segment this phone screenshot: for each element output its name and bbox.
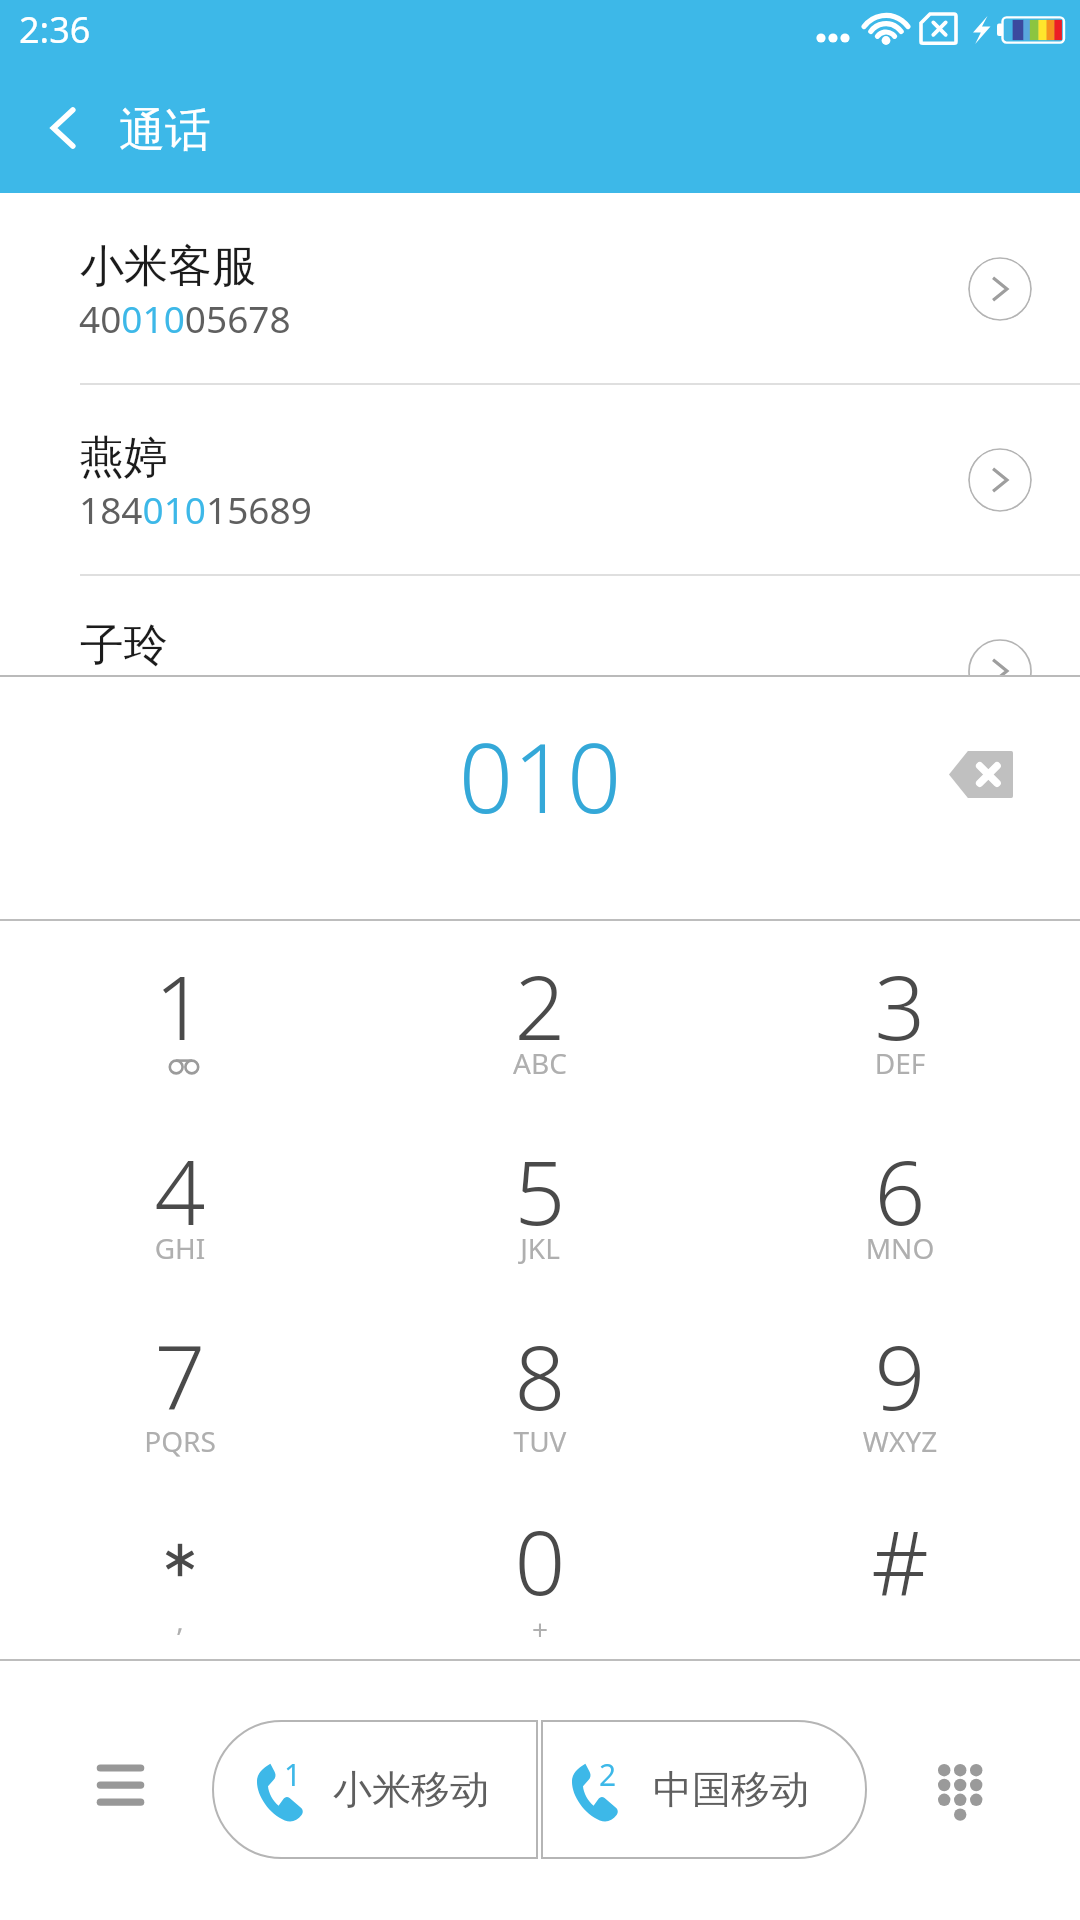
button[interactable]: , <box>0 1475 360 1660</box>
staticText: 小米移动 <box>333 1765 489 1814</box>
button[interactable]: 2 <box>360 920 720 1105</box>
staticText: 6 <box>720 1130 1080 1251</box>
staticText: DEF <box>720 1044 1080 1082</box>
button[interactable]: 4 <box>0 1105 360 1290</box>
staticText: 3 <box>720 945 1080 1066</box>
staticText: MNO <box>720 1229 1080 1267</box>
staticText: 7 <box>0 1315 360 1436</box>
staticText: 通话 <box>119 102 211 160</box>
button[interactable]: 3 <box>720 920 1080 1105</box>
staticText: WXYZ <box>720 1422 1080 1460</box>
staticText: 18401015689 <box>79 484 312 534</box>
button[interactable]: # <box>720 1475 1080 1660</box>
button[interactable]: 5 <box>360 1105 720 1290</box>
button[interactable]: 7 <box>0 1290 360 1475</box>
button[interactable]: Open contact details <box>968 257 1032 321</box>
button[interactable]: 1 <box>212 1720 538 1859</box>
staticText: 8 <box>360 1315 720 1436</box>
staticText: 1 <box>284 1754 302 1795</box>
staticText: 1 <box>0 945 360 1066</box>
staticText: TUV <box>360 1422 720 1460</box>
staticText: GHI <box>0 1229 360 1267</box>
button[interactable]: Open contact details <box>968 448 1032 512</box>
button[interactable]: 6 <box>720 1105 1080 1290</box>
button[interactable]: 1 <box>0 920 360 1105</box>
button[interactable]: 0 <box>360 1475 720 1660</box>
staticText: 燕婷 <box>80 430 168 485</box>
staticText: 5 <box>360 1130 720 1251</box>
staticText: 9 <box>720 1315 1080 1436</box>
button[interactable]: 小米客服 <box>0 193 1080 384</box>
staticText: + <box>360 1610 720 1648</box>
staticText: 子玲 <box>80 618 168 673</box>
button[interactable]: Show dialpad <box>912 1744 1008 1840</box>
staticText: 0 <box>360 1500 720 1621</box>
button[interactable]: Call log menu <box>72 1737 168 1833</box>
staticText: 小米客服 <box>80 239 256 294</box>
staticText: ABC <box>360 1044 720 1082</box>
staticText: 2 <box>360 945 720 1066</box>
button[interactable]: Back <box>16 72 112 184</box>
staticText: 4 <box>0 1130 360 1251</box>
button[interactable]: 2 <box>541 1720 867 1859</box>
button[interactable]: 8 <box>360 1290 720 1475</box>
staticText: PQRS <box>0 1422 360 1460</box>
staticText: 2:36 <box>19 5 91 54</box>
staticText: JKL <box>360 1229 720 1267</box>
button[interactable]: 子玲 <box>0 575 1080 675</box>
button[interactable]: 9 <box>720 1290 1080 1475</box>
staticText: 010 <box>0 711 1080 840</box>
staticText: 4001005678 <box>79 293 291 343</box>
button[interactable]: 燕婷 <box>0 384 1080 575</box>
staticText: 中国移动 <box>653 1765 809 1814</box>
button[interactable]: Backspace <box>935 728 1027 820</box>
staticText: 2 <box>599 1754 617 1795</box>
staticText: # <box>720 1500 1080 1621</box>
